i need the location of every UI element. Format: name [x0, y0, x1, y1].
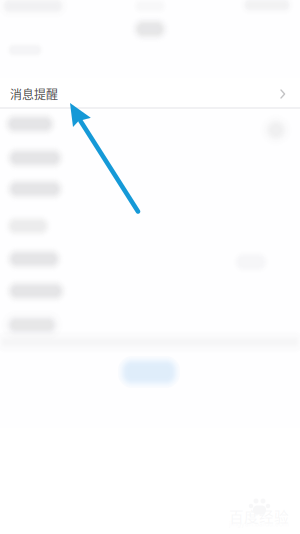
button[interactable]: 消息提醒 [0, 78, 300, 110]
staticText: 消息提醒 [10, 85, 58, 103]
